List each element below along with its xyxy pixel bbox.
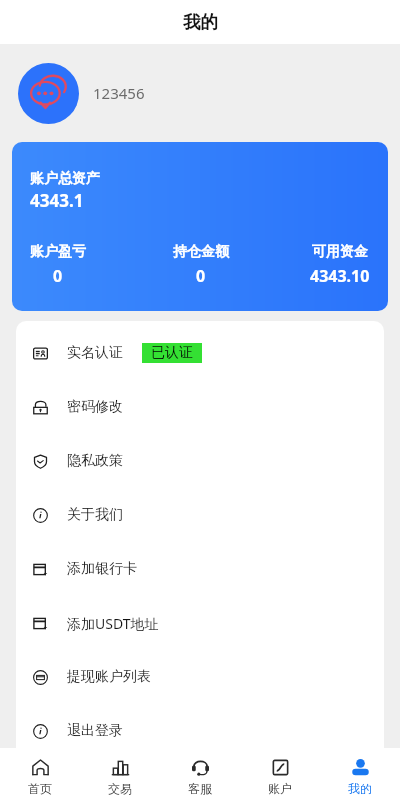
staticText: 密码修改 — [67, 398, 123, 416]
button[interactable]: 123456 — [18, 44, 400, 142]
staticText: 添加银行卡 — [67, 560, 137, 578]
staticText: 隐私政策 — [67, 452, 123, 470]
staticText: 账户盈亏 — [30, 243, 86, 261]
staticText: 123456 — [93, 83, 145, 103]
staticText: 客服 — [188, 781, 212, 796]
button[interactable]: 我的 — [320, 748, 400, 804]
button[interactable]: 实名认证 — [16, 326, 384, 380]
button[interactable]: 客服 — [160, 748, 240, 804]
button[interactable]: 首页 — [0, 748, 80, 804]
staticText: 实名认证 — [67, 344, 123, 362]
staticText: 交易 — [108, 781, 132, 796]
staticText: 添加USDT地址 — [67, 614, 159, 633]
staticText: 可用资金 — [312, 243, 368, 261]
staticText: 账户总资产 — [30, 170, 100, 188]
button[interactable]: 添加银行卡 — [16, 542, 384, 596]
button[interactable]: 关于我们 — [16, 488, 384, 542]
staticText: 持仓金额 — [173, 243, 229, 261]
button[interactable]: 密码修改 — [16, 380, 384, 434]
staticText: 我的 — [348, 781, 372, 796]
staticText: 我的 — [183, 11, 218, 33]
button[interactable]: 提现账户列表 — [16, 650, 384, 704]
staticText: 已认证 — [151, 344, 193, 362]
staticText: 4343.10 — [310, 265, 370, 287]
staticText: 0 — [196, 265, 206, 287]
staticText: 关于我们 — [67, 506, 123, 524]
staticText: 退出登录 — [67, 722, 123, 740]
staticText: 4343.1 — [30, 189, 84, 212]
button[interactable]: 隐私政策 — [16, 434, 384, 488]
staticText: 首页 — [28, 781, 52, 796]
staticText: 账户 — [268, 781, 292, 796]
button[interactable]: 添加USDT地址 — [16, 596, 384, 650]
button[interactable]: 退出登录 — [16, 704, 384, 748]
staticText: 0 — [53, 265, 63, 287]
button[interactable]: 账户总资产 — [12, 142, 388, 311]
staticText: 提现账户列表 — [67, 668, 151, 686]
button[interactable]: 交易 — [80, 748, 160, 804]
button[interactable]: 账户 — [240, 748, 320, 804]
